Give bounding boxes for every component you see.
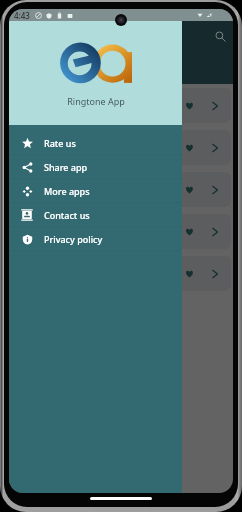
staticText: Favourite — [23, 52, 72, 67]
button[interactable] — [17, 214, 231, 249]
staticText: Ringtone App — [67, 95, 125, 107]
button[interactable]: More apps — [9, 179, 182, 203]
staticText: Contact us — [44, 209, 90, 221]
button[interactable] — [17, 88, 231, 123]
button[interactable]: Search — [211, 27, 229, 45]
button[interactable] — [17, 130, 231, 165]
button[interactable]: Share app — [9, 155, 182, 179]
staticText: 4:43 — [14, 10, 30, 21]
staticText: Share app — [44, 161, 88, 173]
button[interactable]: Privacy policy — [9, 227, 182, 251]
button[interactable]: Rate us — [9, 131, 182, 155]
button[interactable]: Contact us — [9, 203, 182, 227]
staticText: Privacy policy — [44, 233, 103, 245]
button[interactable] — [17, 256, 231, 291]
staticText: Rate us — [44, 137, 76, 149]
staticText: More apps — [44, 185, 90, 197]
button[interactable] — [17, 172, 231, 207]
